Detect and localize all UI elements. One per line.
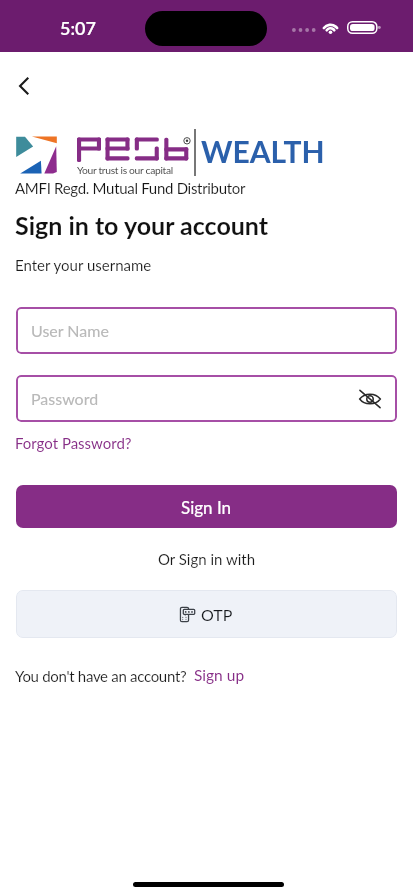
staticText: Or Sign in with bbox=[0, 550, 413, 568]
button[interactable]: Show password bbox=[355, 384, 385, 414]
staticText: Your trust is our capital bbox=[77, 164, 173, 176]
staticText: You don't have an account? bbox=[15, 667, 187, 685]
button[interactable]: Sign In bbox=[16, 485, 397, 528]
staticText: Sign In bbox=[181, 497, 232, 517]
staticText: AMFI Regd. Mutual Fund Distributor bbox=[15, 179, 246, 197]
button[interactable]: Back bbox=[4, 66, 44, 106]
staticText: Enter your username bbox=[15, 256, 152, 274]
button[interactable]: Password bbox=[16, 375, 397, 422]
button[interactable]: Sign up bbox=[194, 666, 245, 685]
staticText: User Name bbox=[31, 321, 109, 340]
button[interactable]: OTP bbox=[16, 590, 397, 638]
staticText: Sign in to your account bbox=[15, 210, 269, 240]
staticText: OTP bbox=[201, 605, 233, 624]
staticText: Sign up bbox=[194, 666, 245, 685]
button[interactable]: User Name bbox=[16, 307, 397, 354]
staticText: 5:07 bbox=[60, 17, 96, 39]
staticText: Password bbox=[31, 389, 99, 408]
button[interactable]: Forgot Password? bbox=[15, 434, 132, 452]
staticText: WEALTH bbox=[201, 133, 325, 169]
staticText: Forgot Password? bbox=[15, 434, 132, 452]
